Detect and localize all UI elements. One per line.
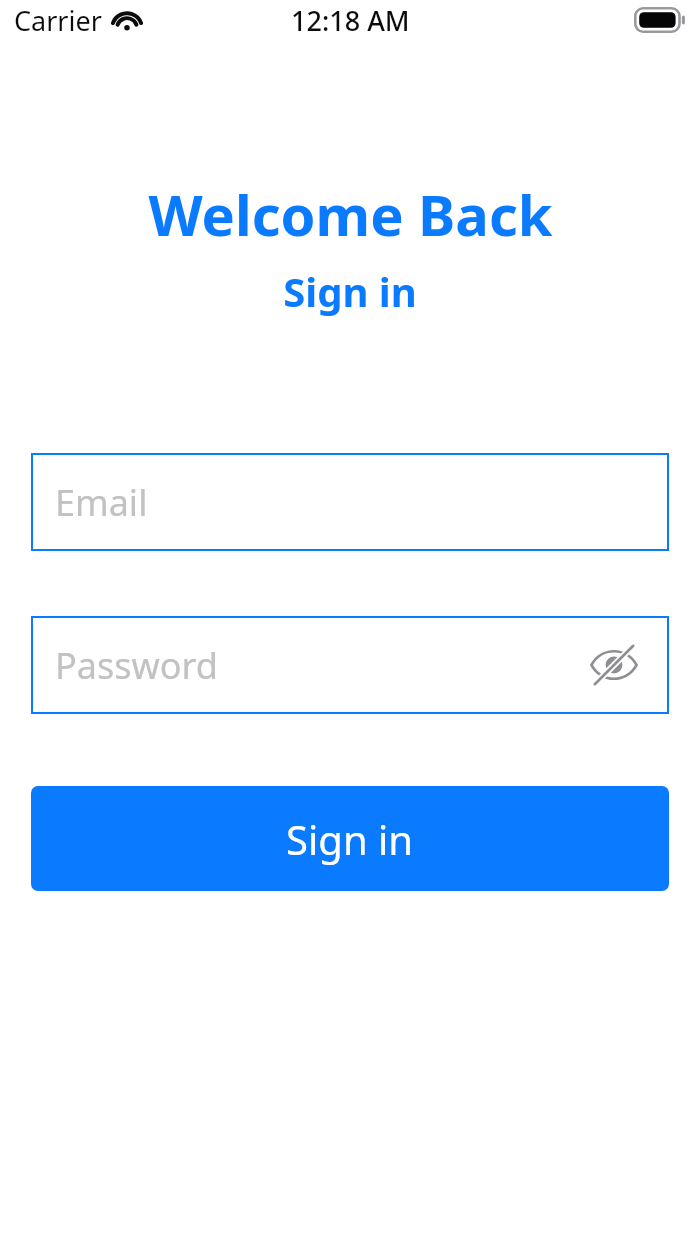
staticText: Email [55,478,148,527]
staticText: Sign in [283,264,417,318]
button[interactable]: Show password [586,637,642,693]
staticText: Welcome Back [148,176,553,252]
button[interactable]: Email [31,453,669,551]
staticText: Sign in [286,812,414,866]
staticText: Password [55,641,218,690]
button[interactable]: Sign in [31,786,669,891]
staticText: 12:18 AM [291,2,410,39]
staticText: Carrier [14,2,102,39]
button[interactable]: Password [31,616,669,714]
